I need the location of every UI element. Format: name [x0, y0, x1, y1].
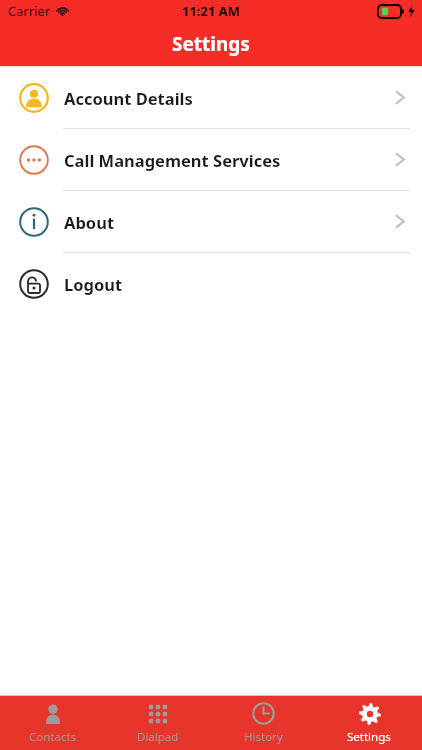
- staticText: Account Details: [64, 87, 193, 109]
- button[interactable]: About: [0, 191, 422, 252]
- button[interactable]: Dialpad: [105, 696, 210, 750]
- staticText: Settings: [347, 729, 391, 745]
- button[interactable]: Account Details: [0, 67, 422, 128]
- staticText: Logout: [64, 273, 123, 295]
- button[interactable]: Settings: [316, 696, 422, 750]
- staticText: About: [64, 211, 115, 233]
- staticText: Contacts: [29, 729, 77, 745]
- other: History: [252, 702, 275, 725]
- other: Dialpad: [147, 703, 169, 725]
- staticText: Settings: [172, 31, 250, 57]
- button[interactable]: History: [210, 696, 316, 750]
- staticText: Carrier: [8, 2, 51, 20]
- button[interactable]: Contacts: [0, 696, 105, 750]
- other: Contacts: [42, 703, 64, 725]
- button[interactable]: Call Management Services: [0, 129, 422, 190]
- staticText: Call Management Services: [64, 149, 281, 171]
- staticText: 11:21 AM: [182, 2, 241, 20]
- staticText: History: [244, 729, 283, 745]
- other: Settings: [359, 703, 381, 725]
- button[interactable]: Logout: [0, 253, 422, 314]
- staticText: Dialpad: [137, 729, 179, 745]
